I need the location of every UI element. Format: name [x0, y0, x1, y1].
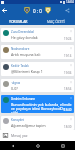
staticText: Kediiir Taslak [11, 64, 29, 68]
staticText: 19:04 [64, 71, 72, 75]
button[interactable]: More options [69, 29, 73, 33]
staticText: 19:24 [64, 37, 72, 41]
button[interactable]: Attach image [3, 133, 8, 138]
button[interactable]: Zuzu Deeeedsbxl [1, 28, 74, 42]
button[interactable]: Kediiir Taslak [1, 62, 74, 76]
button[interactable]: Konaydet [1, 116, 74, 130]
staticText: 18:40 [64, 108, 72, 112]
button[interactable]: More options [69, 46, 73, 50]
button[interactable]: Noahandcare [1, 45, 74, 59]
staticText: 18:54 [64, 87, 72, 91]
staticText: MAÇ ÖZETİ [47, 19, 65, 24]
staticText: 18:30 [64, 125, 72, 129]
staticText: He gözy ıkındak [11, 35, 38, 40]
staticText: 0 : 0 [33, 8, 42, 14]
staticText: 19:14 [64, 54, 72, 58]
staticText: Artık muşuna kalı [11, 52, 41, 57]
button[interactable]: YORUMLAR [0, 18, 37, 25]
staticText: YORUMLAR [9, 19, 28, 24]
button[interactable]: More options [69, 80, 73, 84]
staticText: Zuzu Deeeedsbxl [11, 30, 35, 34]
button[interactable]: Back [1, 7, 8, 14]
staticText: @Bilerinmt Kasıp 1 [11, 69, 43, 74]
staticText: Noahandcare [11, 47, 30, 51]
button[interactable]: Ibrahim Erdurann [1, 95, 74, 113]
staticText: 0-0? [11, 86, 18, 91]
staticText: ·ulgras [11, 81, 21, 85]
button[interactable]: Back [0, 141, 25, 150]
button[interactable]: Recents [50, 141, 75, 150]
staticText: Ibrahim Erdurann [11, 97, 36, 101]
button[interactable]: Home [25, 141, 50, 150]
button[interactable]: More options [69, 63, 73, 67]
staticText: Ağızmadğımız tapim [11, 123, 46, 128]
staticText: Bunusthoxtinin yok kulanda, elimde ve pa… [11, 102, 72, 113]
staticText: Mesaj yaz [11, 133, 28, 138]
button[interactable]: ·ulgras [1, 79, 74, 92]
button[interactable]: More options [69, 96, 73, 100]
button[interactable]: Share [65, 8, 70, 13]
button[interactable]: More options [69, 117, 73, 121]
staticText: Konaydet [11, 118, 24, 122]
button[interactable]: MAÇ ÖZETİ [37, 18, 75, 25]
staticText: 14:04 [66, 0, 74, 4]
